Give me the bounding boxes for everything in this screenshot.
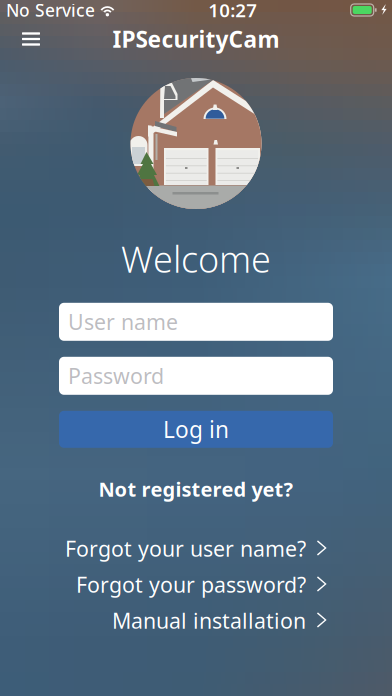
button[interactable]: Menu [9, 21, 53, 57]
staticText: Not registered yet? [98, 476, 293, 502]
staticText: Forgot your password? [76, 570, 306, 598]
button[interactable]: Forgot your user name? [0, 530, 392, 566]
staticText: Forgot your user name? [65, 534, 306, 562]
staticText: User name [68, 308, 178, 336]
button[interactable]: Manual installation [0, 602, 392, 638]
staticText: Password [68, 362, 164, 390]
staticText: Welcome [121, 235, 271, 283]
staticText: IPSecurityCam [112, 24, 279, 54]
staticText: Manual installation [112, 606, 306, 634]
staticText: No Service [6, 0, 95, 21]
staticText: Log in [163, 414, 229, 444]
staticText: 10:27 [208, 0, 257, 22]
button[interactable]: Log in [59, 411, 333, 448]
button[interactable]: Forgot your password? [0, 566, 392, 602]
